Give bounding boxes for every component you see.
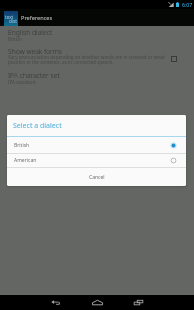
- staticText: Show weak forms: [8, 47, 62, 56]
- staticText: IPA standard: [8, 79, 36, 85]
- staticText: Select a dialect: [13, 121, 62, 131]
- button[interactable]: American: [7, 154, 186, 167]
- staticText: text: [5, 14, 14, 20]
- button[interactable]: Cancel: [73, 169, 121, 186]
- button[interactable]: Recent apps: [118, 295, 159, 310]
- staticText: American: [14, 157, 37, 164]
- staticText: Vary pronunciation depending on whether …: [8, 54, 166, 65]
- staticText: IPA character set: [8, 71, 60, 80]
- staticText: Preferences: [21, 14, 53, 22]
- button[interactable]: Back: [35, 295, 76, 310]
- staticText: Cancel: [89, 174, 105, 181]
- staticText: British: [14, 142, 30, 149]
- staticText: English dialect: [8, 28, 53, 37]
- staticText: 6:07: [182, 1, 193, 8]
- button[interactable]: Home: [76, 295, 118, 310]
- button[interactable]: British: [7, 137, 186, 153]
- staticText: British: [8, 36, 22, 42]
- staticText: dist: [9, 18, 17, 24]
